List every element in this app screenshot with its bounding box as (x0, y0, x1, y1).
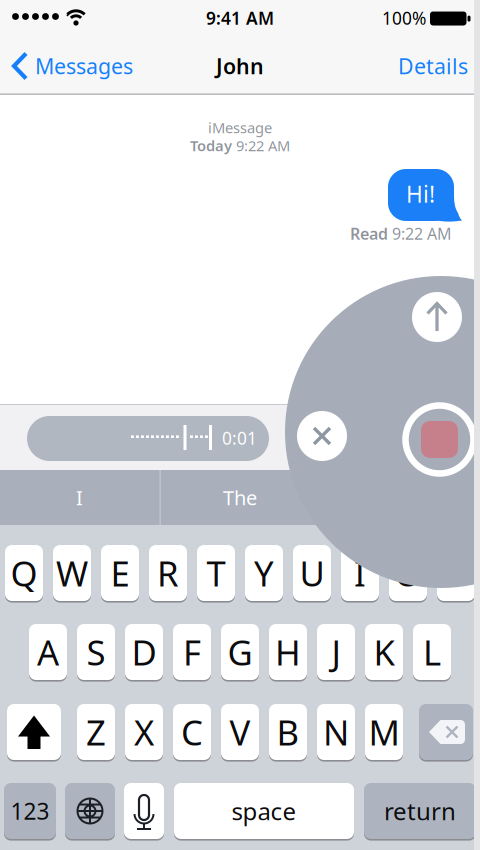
button[interactable]: L (413, 624, 451, 680)
staticText: Hi! (406, 179, 435, 209)
staticText: V (229, 709, 250, 755)
staticText: Z (86, 709, 106, 755)
staticText: 100% (382, 6, 426, 29)
button[interactable]: O (389, 545, 427, 601)
button[interactable]: Z (77, 704, 115, 760)
button[interactable]: I (0, 470, 159, 525)
staticText: space (231, 795, 296, 827)
button[interactable]: P (437, 545, 475, 601)
staticText: 0:01 (222, 426, 257, 449)
button[interactable]: R (149, 545, 187, 601)
staticText: K (373, 629, 394, 675)
staticText: F (183, 629, 201, 675)
staticText: H (275, 629, 301, 675)
staticText: O (394, 550, 421, 596)
button[interactable]: Stop recording (402, 402, 477, 477)
button[interactable]: Shift (7, 704, 61, 760)
staticText: N (323, 709, 349, 755)
staticText: return (384, 795, 456, 827)
staticText: X (134, 709, 154, 755)
staticText: U (299, 550, 324, 596)
button[interactable]: C (173, 704, 211, 760)
button[interactable]: T (197, 545, 235, 601)
button[interactable]: space (174, 783, 354, 839)
staticText: Details (398, 52, 468, 80)
staticText: Messages (35, 52, 133, 80)
staticText: 9:41 AM (206, 6, 274, 29)
button[interactable]: J (317, 624, 355, 680)
button[interactable]: U (293, 545, 331, 601)
staticText: G (227, 629, 252, 675)
staticText: L (423, 629, 441, 675)
button[interactable]: 123 (4, 783, 56, 839)
button[interactable]: X (125, 704, 163, 760)
staticText: D (131, 629, 156, 675)
button[interactable]: Dictate (124, 783, 164, 839)
button[interactable]: B (269, 704, 307, 760)
button[interactable]: M (365, 704, 403, 760)
staticText: John (216, 52, 264, 80)
button[interactable]: K (365, 624, 403, 680)
staticText: T (206, 550, 225, 596)
button[interactable]: F (173, 624, 211, 680)
button[interactable]: W (53, 545, 91, 601)
button[interactable]: E (101, 545, 139, 601)
staticText: Today (190, 136, 232, 155)
staticText: W (56, 550, 88, 596)
staticText: Q (10, 550, 37, 596)
staticText: 9:22 AM (236, 136, 290, 155)
button[interactable]: Back to Messages (12, 49, 133, 83)
button[interactable]: The (160, 470, 319, 525)
staticText: E (110, 550, 129, 596)
button[interactable]: return (364, 783, 476, 839)
button[interactable]: D (125, 624, 163, 680)
staticText: iMessage (208, 118, 272, 137)
staticText: M (368, 709, 399, 755)
staticText: S (86, 629, 105, 675)
button[interactable]: S (77, 624, 115, 680)
button[interactable]: Delete (419, 704, 473, 760)
staticText: A (37, 629, 59, 675)
button[interactable]: Send (412, 292, 462, 342)
staticText: I (76, 484, 83, 511)
staticText: I (354, 550, 366, 596)
button[interactable]: V (221, 704, 259, 760)
button[interactable]: H (269, 624, 307, 680)
staticText: The (223, 484, 257, 511)
button[interactable]: Q (5, 545, 43, 601)
staticText: Y (254, 550, 274, 596)
staticText: B (276, 709, 299, 755)
button[interactable]: N (317, 704, 355, 760)
button[interactable]: Y (245, 545, 283, 601)
staticText: 123 (10, 796, 49, 826)
button[interactable]: Next keyboard (65, 783, 115, 839)
button[interactable]: I (341, 545, 379, 601)
button[interactable]: Cancel recording (297, 411, 347, 461)
button[interactable]: A (29, 624, 67, 680)
staticText: P (445, 550, 466, 596)
staticText: 9:22 AM (392, 223, 452, 244)
staticText: R (157, 550, 179, 596)
button[interactable]: G (221, 624, 259, 680)
button[interactable]: Details (398, 49, 468, 83)
staticText: J (331, 629, 340, 675)
staticText: Read (350, 223, 388, 244)
staticText: C (181, 709, 203, 755)
